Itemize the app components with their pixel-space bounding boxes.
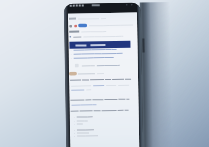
- button[interactable]: [69, 41, 130, 49]
